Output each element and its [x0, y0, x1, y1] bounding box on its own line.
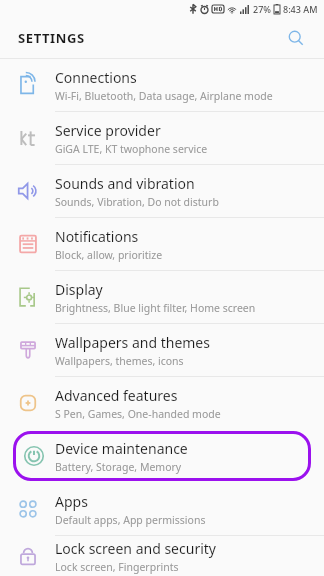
staticText: Wi-Fi, Bluetooth, Data usage, Airplane m…: [55, 89, 273, 103]
button[interactable]: Lock screen and security: [0, 536, 324, 576]
staticText: Sounds and vibration: [55, 174, 195, 193]
staticText: Battery, Storage, Memory: [55, 460, 182, 474]
staticText: S Pen, Games, One-handed mode: [55, 407, 221, 421]
staticText: GiGA LTE, KT twophone service: [55, 142, 208, 156]
staticText: Lock screen and security: [55, 539, 216, 558]
staticText: Advanced features: [55, 386, 178, 405]
staticText: Apps: [55, 492, 88, 511]
staticText: 8:43 AM: [283, 3, 318, 15]
button[interactable]: Search: [282, 24, 310, 52]
staticText: Service provider: [55, 121, 161, 140]
staticText: Wallpapers and themes: [55, 333, 210, 352]
button[interactable]: Apps: [0, 483, 324, 535]
button[interactable]: Display: [0, 271, 324, 323]
staticText: 27%: [253, 3, 271, 15]
staticText: Block, allow, prioritize: [55, 248, 163, 262]
button[interactable]: Device maintenance: [13, 431, 311, 481]
button[interactable]: Sounds and vibration: [0, 165, 324, 217]
staticText: SETTINGS: [18, 29, 85, 47]
button[interactable]: Advanced features: [0, 377, 324, 429]
staticText: Connections: [55, 68, 137, 87]
staticText: Notifications: [55, 227, 139, 246]
staticText: Lock screen, Fingerprints: [55, 560, 179, 574]
staticText: Sounds, Vibration, Do not disturb: [55, 195, 219, 209]
staticText: Default apps, App permissions: [55, 513, 206, 527]
staticText: Wallpapers, themes, icons: [55, 354, 184, 368]
button[interactable]: Notifications: [0, 218, 324, 270]
button[interactable]: Wallpapers and themes: [0, 324, 324, 376]
staticText: Brightness, Blue light filter, Home scre…: [55, 301, 256, 315]
button[interactable]: Connections: [0, 59, 324, 111]
staticText: Display: [55, 280, 103, 299]
staticText: Device maintenance: [55, 439, 188, 458]
button[interactable]: Service provider: [0, 112, 324, 164]
